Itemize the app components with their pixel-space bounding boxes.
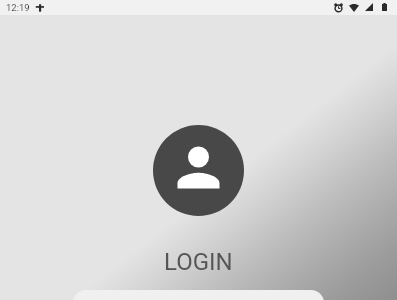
other: Alarm set	[334, 3, 343, 12]
staticText: 12:19	[6, 2, 30, 13]
other: Wi-Fi	[349, 4, 359, 12]
staticText: LOGIN	[164, 248, 233, 276]
other: Battery	[382, 3, 387, 11]
other: Accessibility	[35, 4, 44, 12]
button[interactable]: Profile picture	[153, 125, 244, 216]
other: Mobile signal	[365, 3, 373, 11]
